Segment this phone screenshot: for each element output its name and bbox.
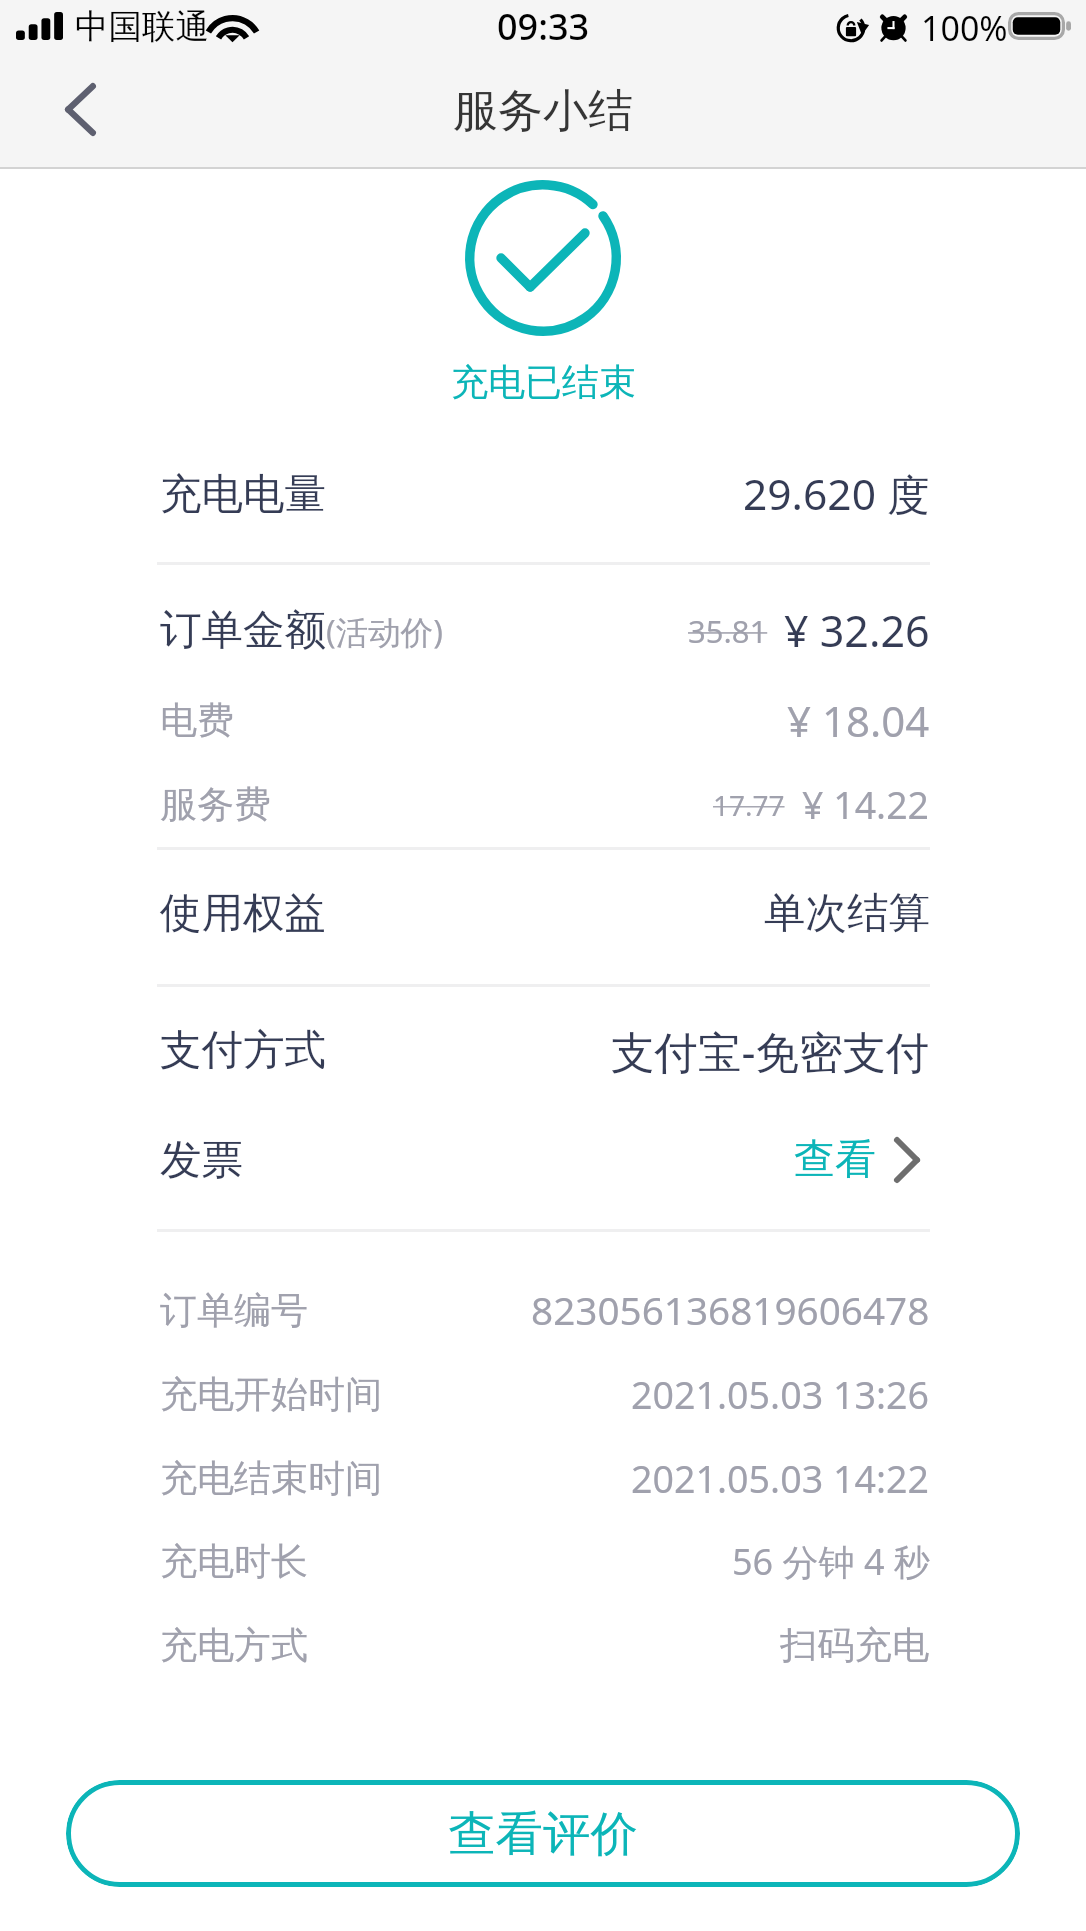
button[interactable]: 充电电量: [160, 439, 930, 549]
staticText: 2021.05.03 13:26: [631, 1369, 930, 1420]
staticText: 订单编号: [160, 1287, 308, 1334]
staticText: 查看: [794, 1134, 876, 1186]
staticText: 查看评价: [448, 1804, 638, 1864]
staticText: 支付宝-免密支付: [611, 1021, 930, 1080]
staticText: 充电方式: [160, 1622, 308, 1669]
staticText: 100%: [921, 5, 1008, 47]
staticText: 充电时长: [160, 1538, 308, 1585]
staticText: 823056136819606478: [531, 1284, 930, 1337]
staticText: 发票: [160, 1134, 243, 1186]
staticText: 单次结算: [764, 887, 930, 939]
staticText: 35.81: [688, 610, 768, 652]
staticText: 56 分钟 4 秒: [732, 1537, 930, 1586]
staticText: 中国联通: [75, 6, 209, 46]
button[interactable]: 查看评价: [66, 1780, 1020, 1887]
staticText: 充电开始时间: [160, 1371, 382, 1418]
staticText: 充电已结束: [451, 359, 636, 406]
staticText: 09:33: [497, 2, 590, 46]
button[interactable]: Back: [20, 58, 140, 167]
staticText: 使用权益: [160, 887, 326, 939]
staticText: ¥ 32.26: [784, 601, 930, 660]
staticText: 充电结束时间: [160, 1455, 382, 1502]
button[interactable]: 使用权益: [160, 858, 930, 968]
staticText: 支付方式: [160, 1024, 326, 1076]
staticText: ¥ 14.22: [802, 779, 930, 830]
staticText: 2021.05.03 14:22: [631, 1453, 930, 1504]
staticText: 订单金额: [160, 604, 326, 656]
staticText: 服务费: [160, 781, 271, 828]
staticText: (活动价): [326, 609, 444, 653]
staticText: 电费: [160, 697, 234, 744]
staticText: 17.77: [713, 786, 785, 824]
button[interactable]: 发票: [160, 1105, 930, 1215]
button[interactable]: 支付方式: [160, 995, 930, 1105]
staticText: 服务小结: [453, 83, 633, 140]
staticText: ¥ 18.04: [787, 692, 930, 749]
staticText: 29.620 度: [743, 465, 930, 523]
staticText: 扫码充电: [780, 1622, 930, 1669]
staticText: 充电电量: [160, 468, 326, 520]
